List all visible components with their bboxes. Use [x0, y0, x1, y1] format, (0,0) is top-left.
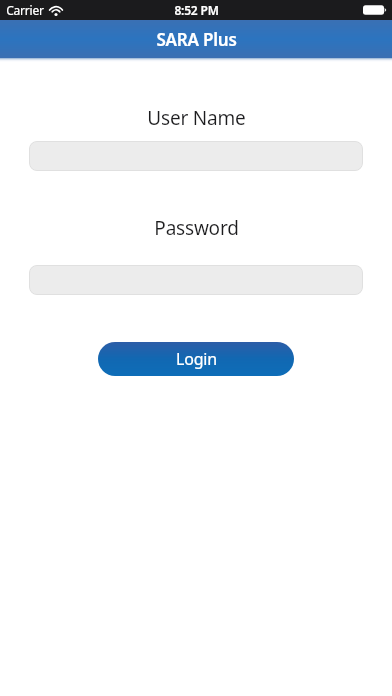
- staticText: Login: [176, 348, 217, 370]
- staticText: 8:52 PM: [174, 2, 219, 18]
- staticText: SARA Plus: [156, 28, 237, 51]
- button[interactable]: [29, 141, 363, 171]
- button[interactable]: Login: [98, 342, 294, 376]
- button[interactable]: [29, 265, 363, 295]
- staticText: Carrier: [6, 2, 44, 18]
- staticText: Password: [154, 215, 239, 241]
- staticText: User Name: [147, 105, 246, 131]
